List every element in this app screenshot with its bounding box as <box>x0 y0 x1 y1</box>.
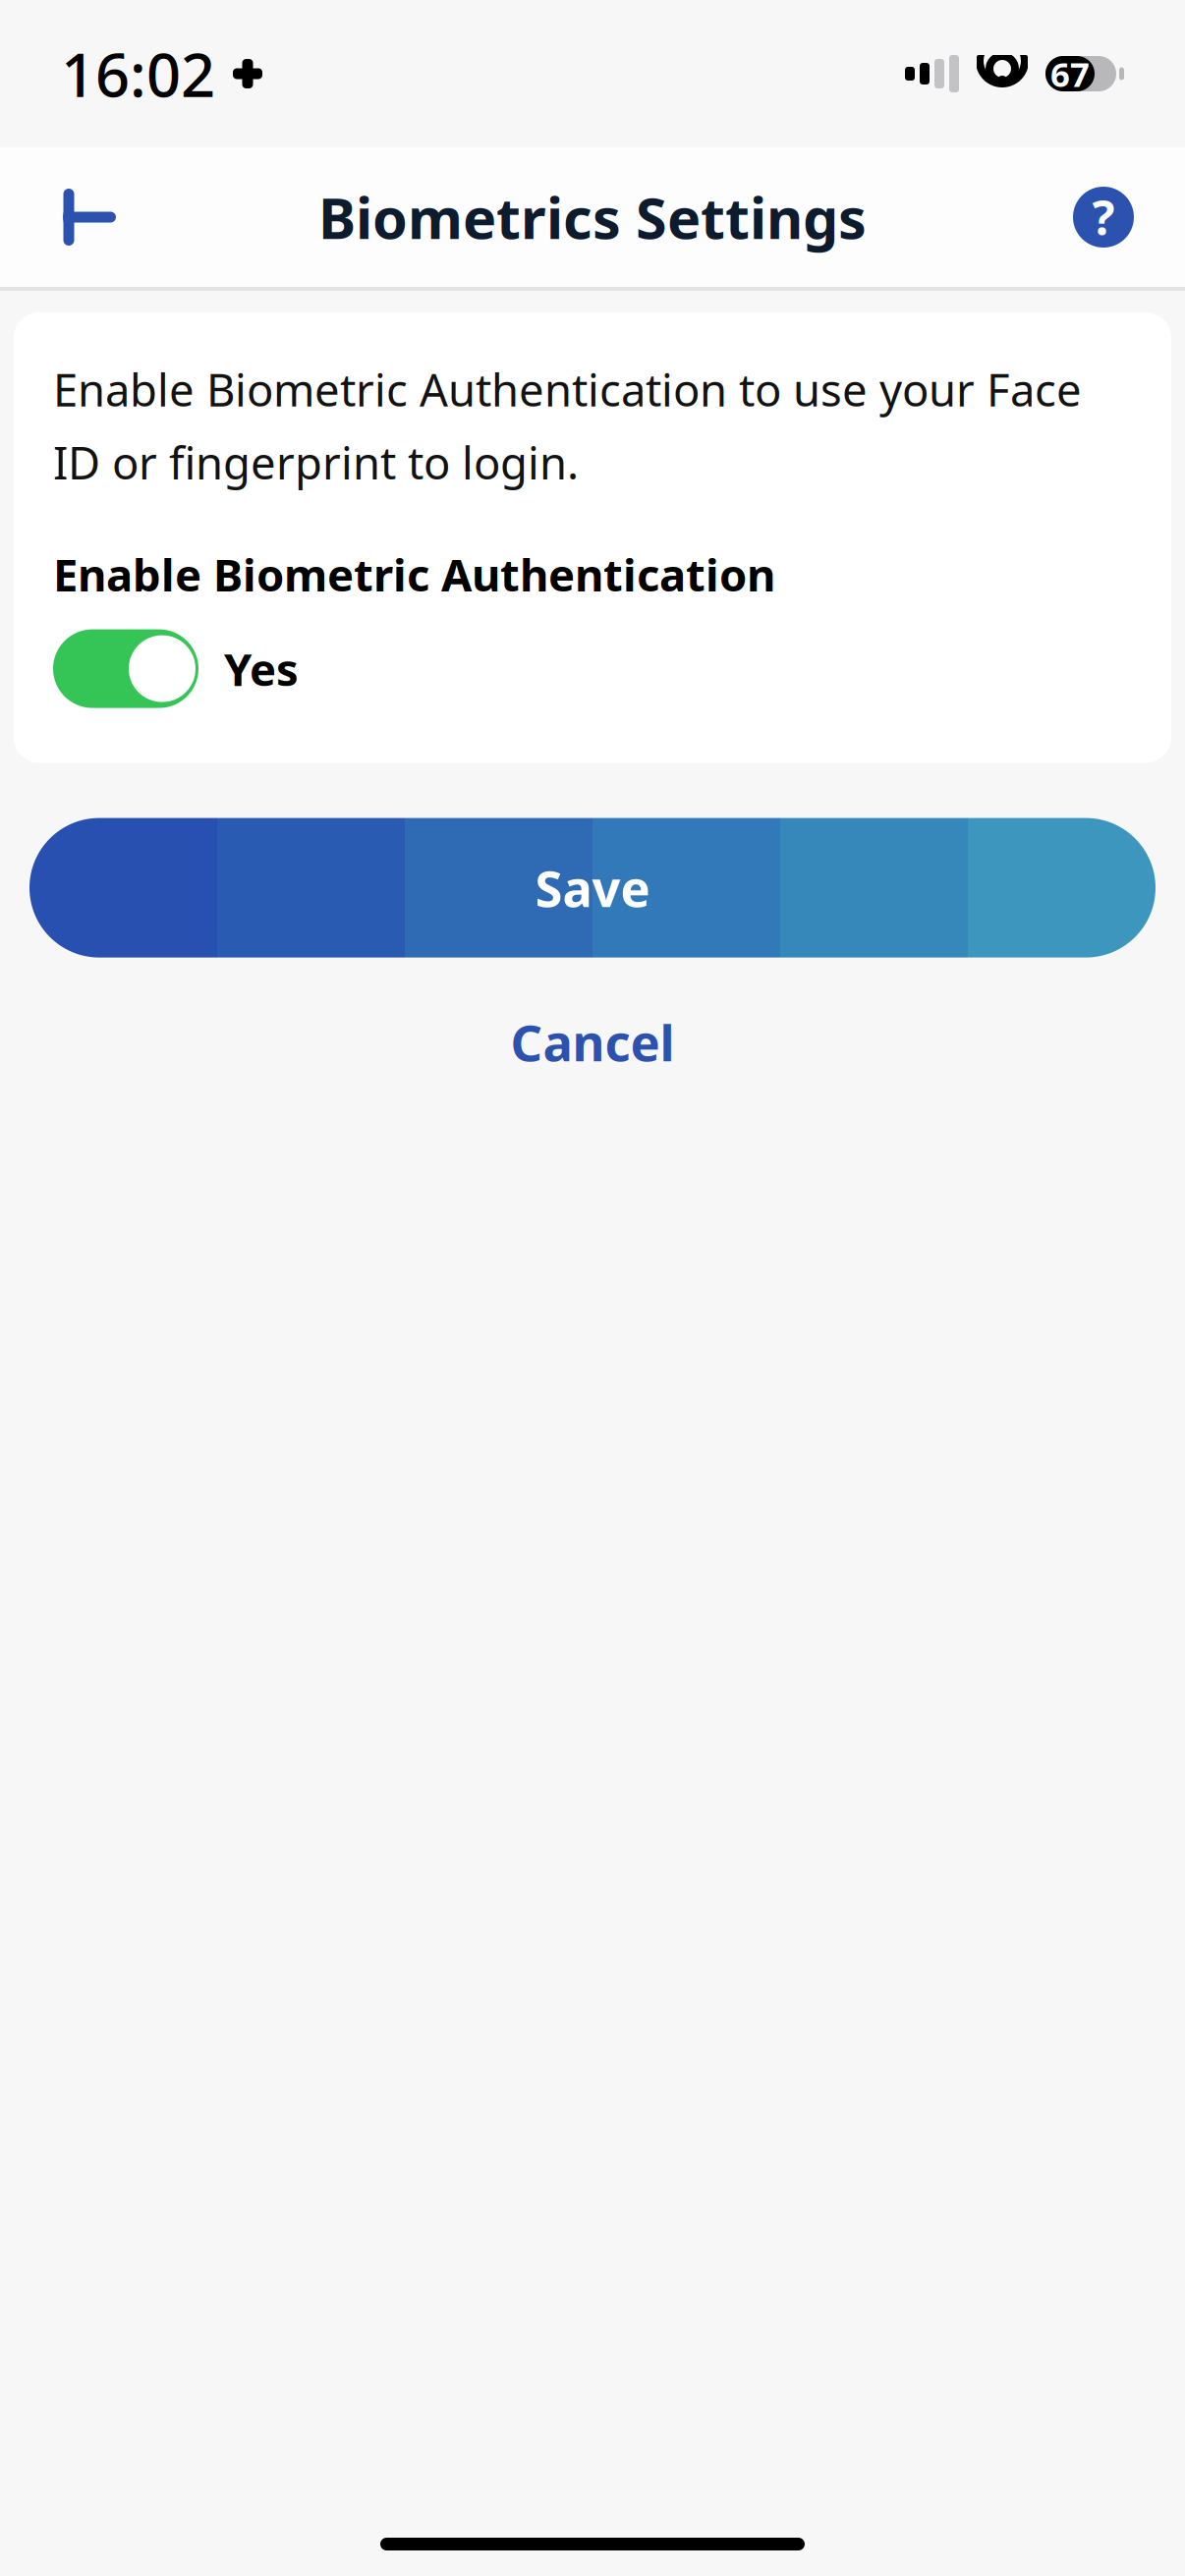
button[interactable]: Save <box>0 818 1185 958</box>
staticText: Save <box>535 855 650 921</box>
staticText: Yes <box>224 639 299 698</box>
staticText: 16:02 <box>61 34 215 114</box>
button[interactable]: Yes <box>53 629 1132 708</box>
staticText: Enable Biometric Authentication <box>53 545 775 604</box>
staticText: Enable Biometric Authentication to use y… <box>53 360 1082 492</box>
staticText: Cancel <box>510 1009 675 1075</box>
button[interactable]: Cancel <box>0 1005 1185 1079</box>
staticText: ? <box>1092 186 1115 248</box>
button[interactable]: Help <box>1049 163 1157 271</box>
button[interactable]: Back <box>28 163 136 271</box>
staticText: 67 <box>1050 51 1090 96</box>
staticText: Biometrics Settings <box>318 180 867 254</box>
